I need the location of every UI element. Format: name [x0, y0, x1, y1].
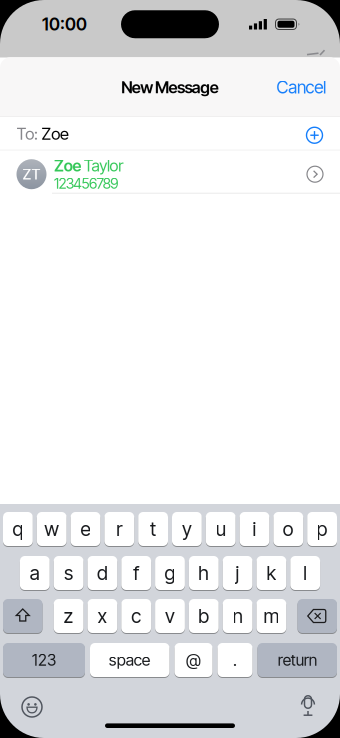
button[interactable]: Add Contact: [306, 126, 322, 142]
staticText: e: [80, 517, 90, 541]
staticText: o: [283, 517, 294, 541]
button[interactable]: f: [121, 556, 151, 590]
button[interactable]: x: [87, 599, 117, 633]
staticText: w: [44, 517, 59, 541]
button[interactable]: ZT: [0, 150, 340, 193]
button[interactable]: e: [71, 512, 100, 546]
staticText: i: [252, 517, 256, 541]
staticText: n: [233, 604, 243, 628]
button[interactable]: return: [257, 643, 337, 677]
staticText: c: [131, 604, 141, 628]
staticText: f: [133, 561, 139, 585]
button[interactable]: 123: [3, 643, 85, 677]
staticText: b: [198, 604, 209, 628]
staticText: a: [30, 561, 40, 585]
button[interactable]: space: [90, 643, 169, 677]
staticText: space: [109, 650, 151, 670]
staticText: z: [64, 604, 74, 628]
staticText: l: [303, 561, 307, 585]
button[interactable]: k: [256, 556, 286, 590]
staticText: 123456789: [54, 175, 118, 192]
button[interactable]: d: [87, 556, 117, 590]
button[interactable]: i: [240, 512, 269, 546]
staticText: p: [317, 517, 328, 541]
staticText: t: [150, 517, 156, 541]
staticText: y: [182, 517, 192, 541]
staticText: q: [12, 517, 23, 541]
staticText: k: [266, 561, 276, 585]
button[interactable]: h: [189, 556, 219, 590]
button[interactable]: n: [223, 599, 252, 633]
button[interactable]: v: [155, 599, 185, 633]
staticText: s: [64, 561, 73, 585]
button[interactable]: g: [155, 556, 185, 590]
button[interactable]: Cancel: [276, 77, 326, 98]
button[interactable]: m: [256, 599, 286, 633]
button[interactable]: c: [121, 599, 151, 633]
button[interactable]: Dictate: [288, 687, 328, 727]
staticText: m: [263, 604, 279, 628]
staticText: u: [216, 517, 226, 541]
staticText: r: [116, 517, 122, 541]
staticText: 123: [32, 650, 56, 669]
staticText: Cancel: [276, 77, 326, 98]
staticText: New Message: [121, 77, 219, 97]
staticText: h: [198, 561, 209, 585]
staticText: @: [186, 650, 201, 670]
button[interactable]: p: [307, 512, 337, 546]
button[interactable]: q: [3, 512, 33, 546]
button[interactable]: Delete: [297, 599, 337, 633]
button[interactable]: l: [290, 556, 320, 590]
button[interactable]: .: [217, 643, 252, 677]
button[interactable]: b: [189, 599, 219, 633]
button[interactable]: z: [54, 599, 83, 633]
staticText: Zoe: [42, 124, 69, 144]
button[interactable]: t: [138, 512, 168, 546]
staticText: 10:00: [42, 14, 87, 35]
button[interactable]: a: [20, 556, 50, 590]
staticText: ZT: [22, 165, 40, 183]
staticText: j: [236, 561, 240, 585]
staticText: v: [165, 604, 175, 628]
button[interactable]: y: [172, 512, 202, 546]
staticText: x: [97, 604, 107, 628]
button[interactable]: w: [37, 512, 67, 546]
staticText: .: [233, 650, 237, 670]
staticText: To:: [16, 124, 42, 144]
button[interactable]: Emoji: [12, 687, 52, 727]
button[interactable]: o: [273, 512, 303, 546]
button[interactable]: r: [104, 512, 134, 546]
button[interactable]: @: [174, 643, 212, 677]
button[interactable]: s: [54, 556, 83, 590]
staticText: d: [97, 561, 108, 585]
button[interactable]: j: [223, 556, 252, 590]
button[interactable]: Shift: [3, 599, 42, 633]
staticText: return: [278, 650, 317, 669]
staticText: Zoe Taylor: [54, 156, 123, 175]
staticText: g: [164, 561, 175, 585]
button[interactable]: u: [206, 512, 236, 546]
